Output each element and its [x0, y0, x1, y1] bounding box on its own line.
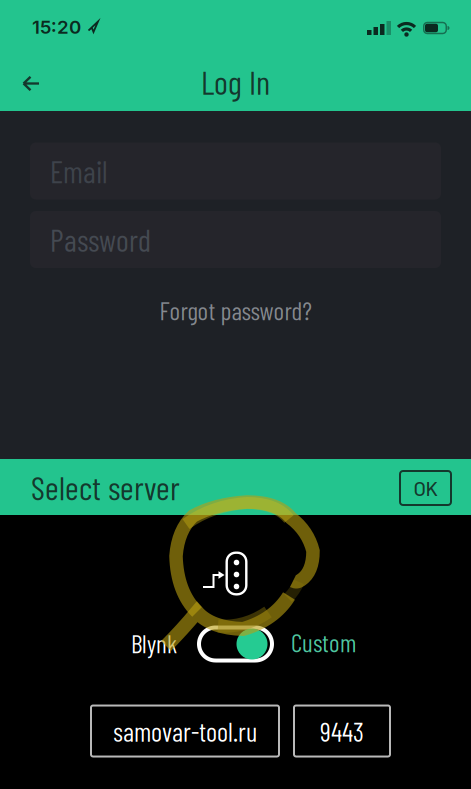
staticText: Email [50, 153, 108, 189]
staticText: Select server [31, 467, 180, 506]
button[interactable]: OK [399, 470, 452, 506]
button[interactable]: Server toggle [197, 625, 274, 662]
staticText: OK [413, 476, 437, 500]
staticText: Blynk [131, 628, 177, 658]
staticText: Forgot password? [159, 295, 311, 325]
button[interactable]: Email [30, 142, 441, 199]
staticText: Password [50, 222, 151, 257]
staticText: 9443 [320, 715, 364, 747]
button[interactable]: Forgot password? [159, 295, 311, 325]
button[interactable]: Password [30, 211, 441, 268]
staticText: samovar-tool.ru [113, 715, 257, 747]
staticText: Log In [201, 62, 270, 101]
button[interactable]: Back [9, 63, 53, 103]
staticText: 15:20 [32, 16, 81, 38]
button[interactable]: 9443 [293, 704, 391, 757]
button[interactable]: samovar-tool.ru [90, 704, 280, 757]
staticText: Custom [291, 627, 356, 657]
